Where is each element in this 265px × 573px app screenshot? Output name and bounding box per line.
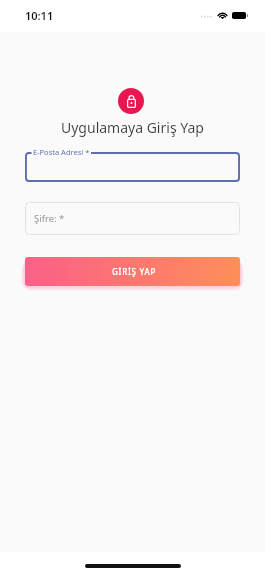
staticText: GİRİŞ YAP <box>112 266 157 277</box>
button[interactable]: GİRİŞ YAP <box>25 257 240 286</box>
staticText: 10:11 <box>25 8 54 23</box>
button[interactable] <box>25 152 240 182</box>
other: Kilit <box>118 88 144 114</box>
staticText: Uygulamaya Giriş Yap <box>61 118 204 137</box>
button[interactable]: Şifre: * <box>25 202 240 235</box>
staticText: E-Posta Adresi * <box>33 147 90 157</box>
staticText: Şifre: * <box>34 212 65 225</box>
